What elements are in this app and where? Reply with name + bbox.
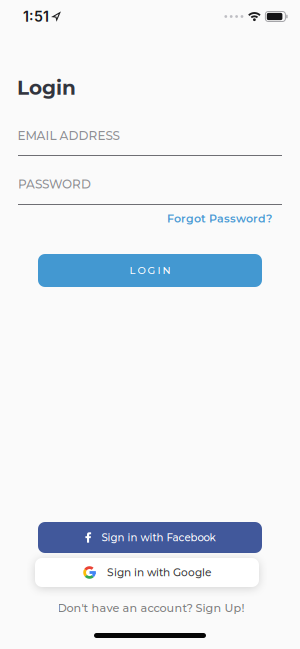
staticText: 1:51 bbox=[23, 8, 49, 25]
button[interactable]: L O G I N bbox=[38, 254, 262, 287]
button[interactable]: Forgot Password? bbox=[167, 212, 272, 225]
staticText: Sign in with Facebook bbox=[101, 531, 215, 544]
staticText: PASSWORD bbox=[18, 177, 91, 191]
staticText: Sign in with Google bbox=[107, 566, 211, 579]
staticText: Don't have an account? Sign Up! bbox=[57, 601, 244, 615]
staticText: L O G I N bbox=[129, 264, 170, 277]
staticText: Forgot Password? bbox=[167, 212, 272, 225]
button[interactable]: Sign in with Facebook bbox=[38, 522, 262, 553]
staticText: EMAIL ADDRESS bbox=[17, 128, 119, 143]
button[interactable]: Sign in with Google bbox=[35, 558, 259, 587]
staticText: Login bbox=[17, 75, 76, 100]
button[interactable]: Don't have an account? Sign Up! bbox=[57, 601, 244, 615]
